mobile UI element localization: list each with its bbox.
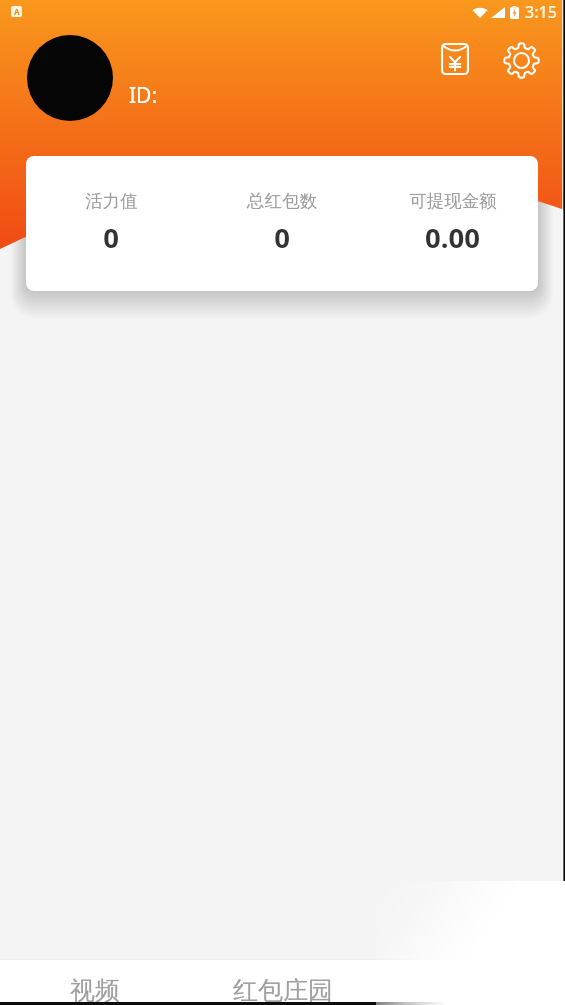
staticText: 视频	[70, 975, 120, 1005]
staticText: 3:15	[525, 1, 557, 23]
button[interactable]: Red packet	[434, 38, 476, 80]
staticText: 0.00	[425, 219, 480, 256]
staticText: 红包庄园	[233, 975, 333, 1005]
button[interactable]: Profile avatar	[27, 35, 113, 121]
button[interactable]: Settings	[500, 39, 543, 82]
staticText: A	[14, 6, 20, 17]
button[interactable]: 红包庄园	[189, 975, 377, 1005]
button[interactable]: 视频	[0, 975, 189, 1005]
staticText: 0	[103, 219, 119, 256]
button[interactable]: 活力值	[26, 156, 538, 291]
staticText: 总红包数	[247, 190, 317, 212]
staticText: 0	[274, 219, 290, 256]
staticText: 活力值	[85, 190, 138, 212]
staticText: ID:	[129, 81, 158, 110]
button[interactable]: 我的	[377, 975, 565, 1005]
staticText: 可提现金额	[409, 190, 497, 212]
